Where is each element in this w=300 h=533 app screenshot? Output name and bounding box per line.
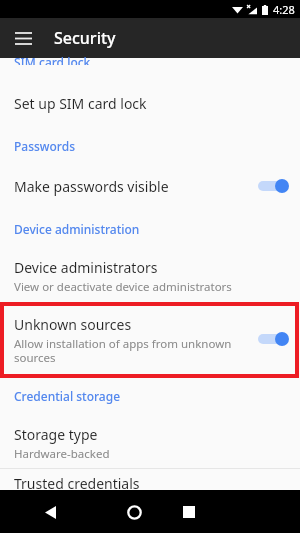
button[interactable]: Storage type [0,425,300,462]
button[interactable]: Home [116,494,152,530]
button[interactable]: Device administrators [0,258,300,295]
button[interactable]: Back [32,494,68,530]
staticText: Hardware-backed [14,446,110,462]
button[interactable]: Set up SIM card lock [0,88,300,118]
staticText: Set up SIM card lock [14,94,147,113]
button[interactable]: Toggle [258,329,289,349]
staticText: Device administrators [14,258,158,277]
staticText: Unknown sources [14,315,132,334]
button[interactable]: Trusted credentials [0,469,300,493]
staticText: View or deactivate device administrators [14,279,232,295]
button[interactable]: Make passwords visible [0,171,300,201]
button[interactable]: Open navigation drawer [8,23,38,53]
staticText: Credential storage [14,388,121,404]
staticText: Allow installation of apps from unknown … [14,336,232,365]
staticText: Security [54,27,116,49]
button[interactable]: Unknown sources [0,315,300,367]
staticText: Device administration [14,221,140,237]
staticText: SIM card lock [14,54,91,65]
button[interactable]: Recent apps [171,494,207,530]
staticText: 4:28 [273,2,295,17]
staticText: Trusted credentials [14,474,140,493]
staticText: Make passwords visible [14,177,258,196]
staticText: Storage type [14,425,98,444]
staticText: Passwords [14,138,75,154]
button[interactable]: Toggle [258,176,289,196]
